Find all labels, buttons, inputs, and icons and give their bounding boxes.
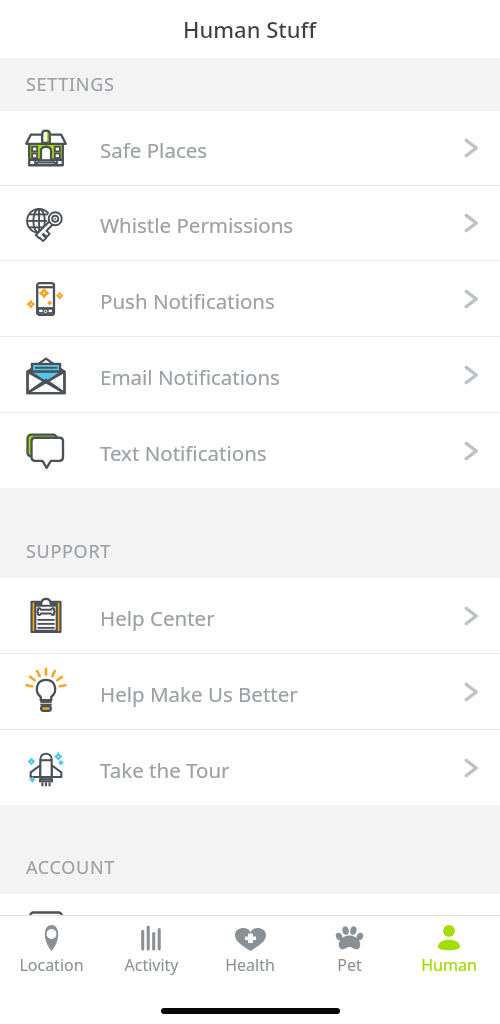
staticText: Location [19, 954, 84, 976]
button[interactable]: Location [3, 916, 99, 976]
button[interactable]: Pet [301, 916, 397, 976]
button[interactable]: Human [401, 916, 497, 976]
staticText: SUPPORT [26, 539, 111, 564]
staticText: Pet [337, 954, 362, 976]
button[interactable]: Activity [103, 916, 199, 976]
staticText: Take the Tour [100, 756, 230, 784]
staticText: Help Make Us Better [100, 680, 298, 708]
button[interactable]: Whistle Permissions [0, 186, 500, 260]
staticText: Help Center [100, 604, 215, 632]
button[interactable]: Health [202, 916, 298, 976]
staticText: Human Stuff [183, 14, 317, 44]
button[interactable]: Email Notifications [0, 337, 500, 412]
button[interactable]: Safe Places [0, 111, 500, 185]
staticText: Whistle Permissions [100, 211, 294, 239]
button[interactable]: Help Make Us Better [0, 654, 500, 729]
staticText: Personal Info [100, 920, 229, 948]
staticText: Safe Places [100, 136, 208, 164]
staticText: Text Notifications [100, 439, 267, 467]
staticText: Push Notifications [100, 287, 275, 315]
staticText: Email Notifications [100, 363, 280, 391]
staticText: Activity [124, 954, 179, 976]
staticText: ACCOUNT [26, 855, 115, 880]
button[interactable]: Take the Tour [0, 730, 500, 805]
staticText: SETTINGS [26, 72, 115, 97]
staticText: Human [421, 954, 477, 976]
button[interactable]: Personal Info [0, 894, 500, 969]
button[interactable]: Text Notifications [0, 413, 500, 488]
button[interactable]: Help Center [0, 578, 500, 653]
button[interactable]: Push Notifications [0, 261, 500, 336]
staticText: Health [225, 954, 275, 976]
